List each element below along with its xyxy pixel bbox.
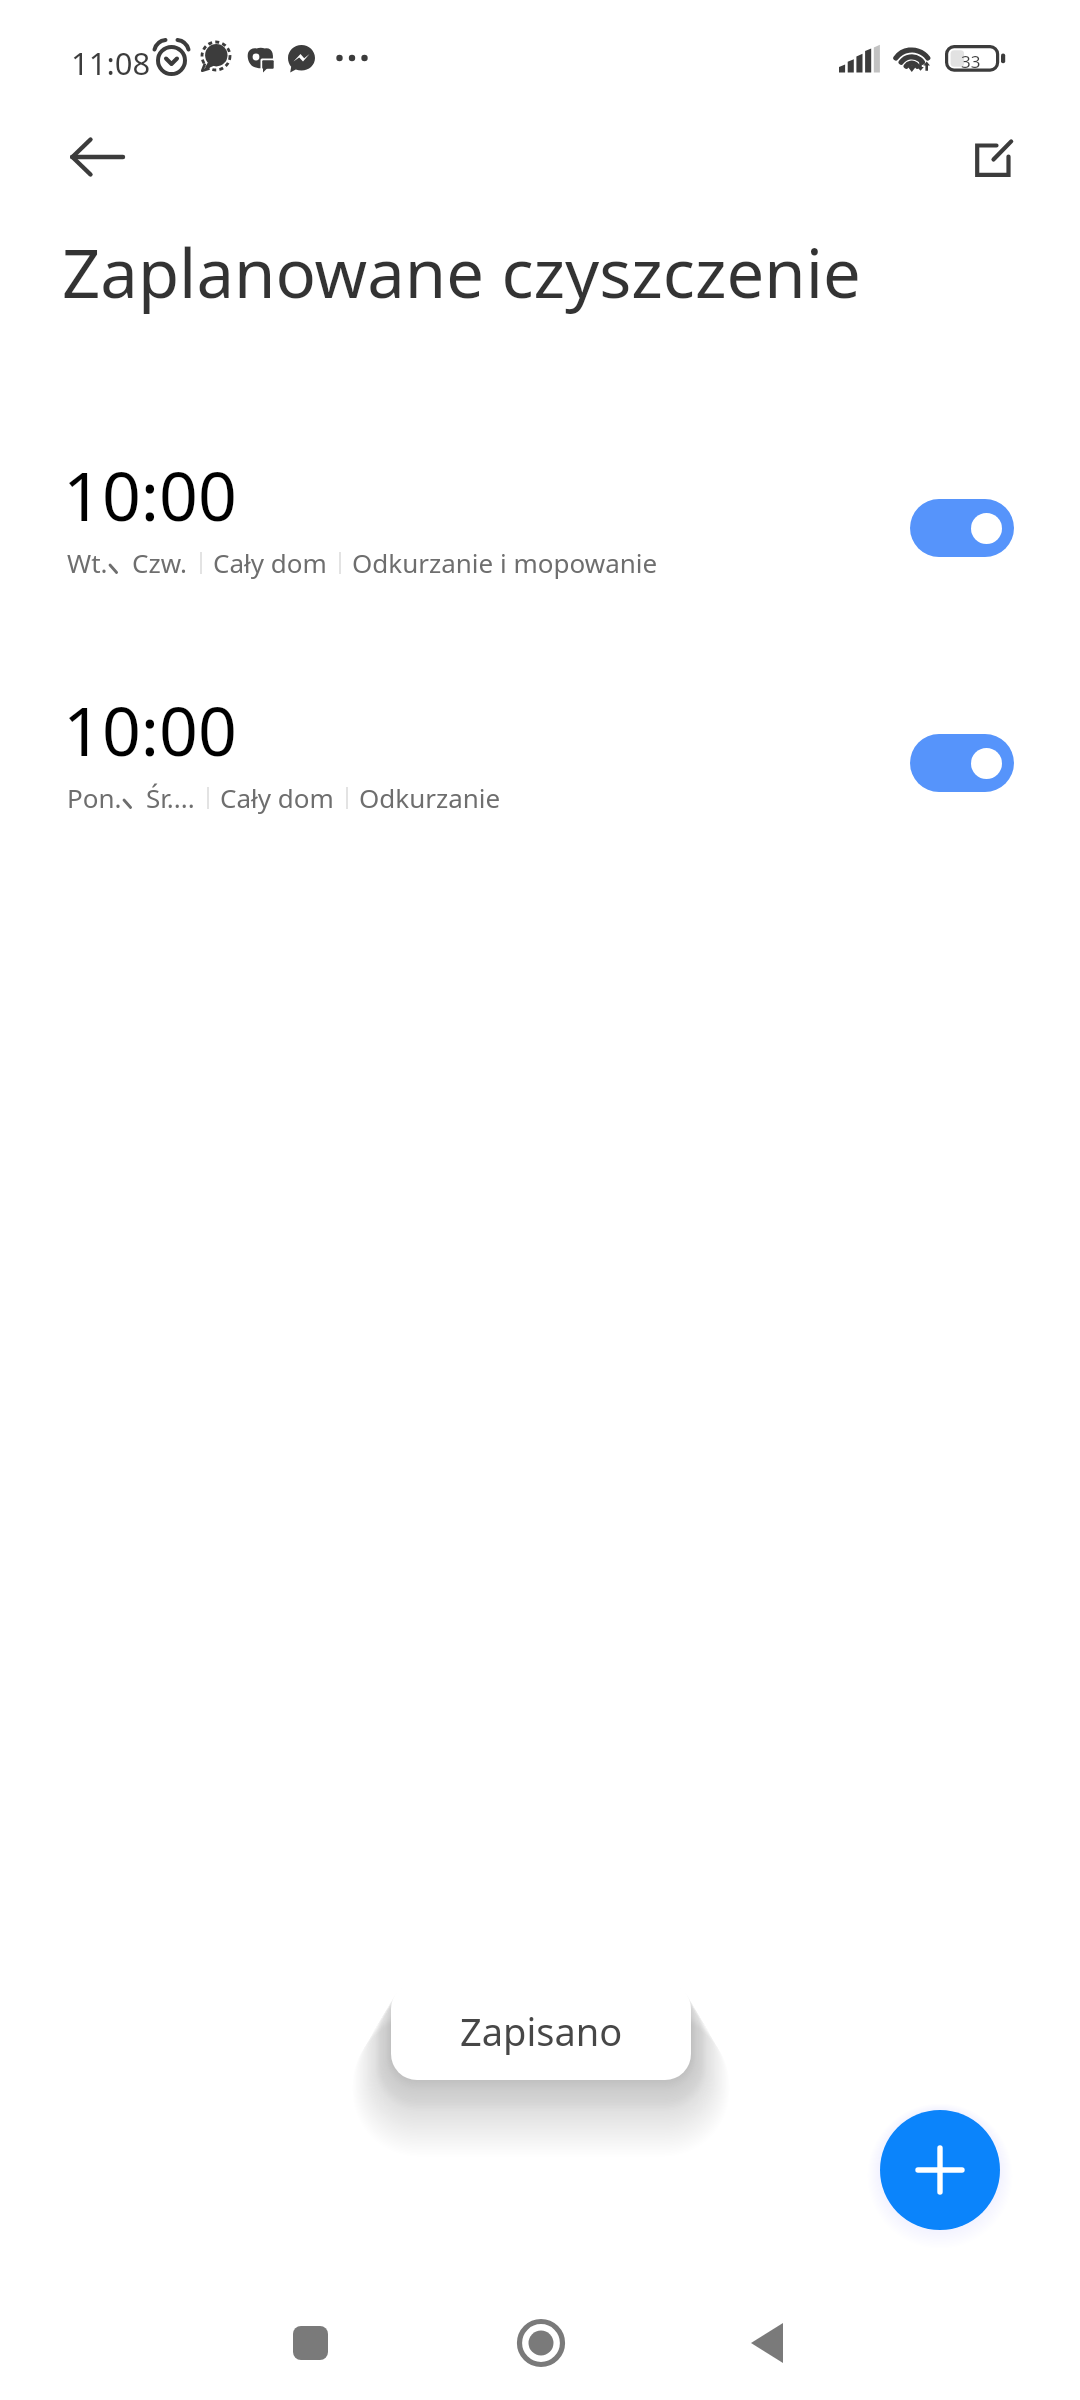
button[interactable]: Home bbox=[498, 2308, 583, 2378]
staticText: 33 bbox=[961, 50, 981, 73]
button[interactable]: Edit bbox=[950, 114, 1038, 202]
staticText: 10:00 bbox=[63, 683, 237, 776]
button[interactable]: 10:00 bbox=[0, 448, 1080, 588]
staticText: 11:08 bbox=[71, 42, 151, 84]
button[interactable]: Add schedule bbox=[880, 2110, 1000, 2230]
button[interactable]: Back bbox=[49, 113, 145, 201]
button[interactable]: Back bbox=[724, 2308, 809, 2378]
staticText: Zaplanowane czyszczenie bbox=[62, 226, 861, 317]
staticText: Cały dom bbox=[213, 545, 327, 580]
button[interactable]: Zapisano bbox=[391, 1983, 691, 2080]
staticText: Czw. bbox=[132, 545, 188, 580]
staticText: Odkurzanie bbox=[359, 780, 501, 815]
button[interactable]: Recent apps bbox=[268, 2308, 353, 2378]
button[interactable]: Toggle schedule bbox=[910, 499, 1014, 557]
staticText: Wt. bbox=[67, 545, 108, 580]
staticText: 10:00 bbox=[63, 448, 237, 541]
staticText: Cały dom bbox=[220, 780, 334, 815]
button[interactable]: Toggle schedule bbox=[910, 734, 1014, 792]
button[interactable]: 10:00 bbox=[0, 683, 1080, 823]
staticText: Pon. bbox=[67, 780, 122, 815]
staticText: Odkurzanie i mopowanie bbox=[352, 545, 658, 580]
staticText: Zapisano bbox=[460, 2005, 623, 2057]
staticText: Śr.... bbox=[146, 780, 195, 815]
